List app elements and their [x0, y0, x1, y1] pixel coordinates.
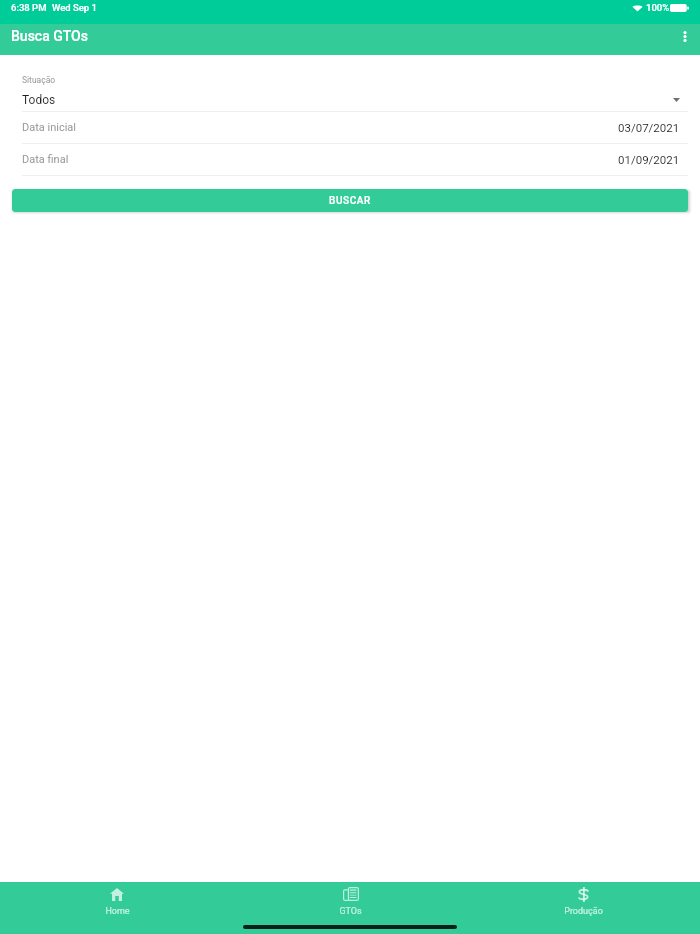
staticText: GTOs	[339, 906, 362, 917]
staticText: 6:38 PM	[11, 2, 47, 13]
staticText: Todos	[22, 93, 56, 107]
staticText: 100%	[646, 2, 670, 13]
button[interactable]: GTOs	[234, 882, 467, 927]
staticText: Busca GTOs	[11, 28, 88, 44]
staticText: Data inicial	[22, 121, 77, 134]
staticText: BUSCAR	[329, 195, 371, 207]
staticText: 03/07/2021	[618, 121, 680, 134]
button[interactable]: More options	[678, 25, 692, 47]
other: Battery full	[670, 4, 689, 12]
button[interactable]: Data inicial	[0, 112, 700, 143]
staticText: 01/09/2021	[618, 153, 680, 166]
button[interactable]: Produção	[467, 882, 700, 927]
staticText: Wed Sep 1	[52, 2, 97, 13]
staticText: Data final	[22, 153, 69, 166]
staticText: Produção	[564, 906, 603, 917]
other: Wi-Fi	[632, 4, 643, 12]
button[interactable]: BUSCAR	[12, 189, 688, 212]
staticText: Home	[105, 906, 130, 917]
staticText: Situação	[22, 75, 56, 85]
button[interactable]: Home	[0, 882, 234, 927]
button[interactable]: Situação	[0, 75, 700, 111]
button[interactable]: Data final	[0, 144, 700, 175]
